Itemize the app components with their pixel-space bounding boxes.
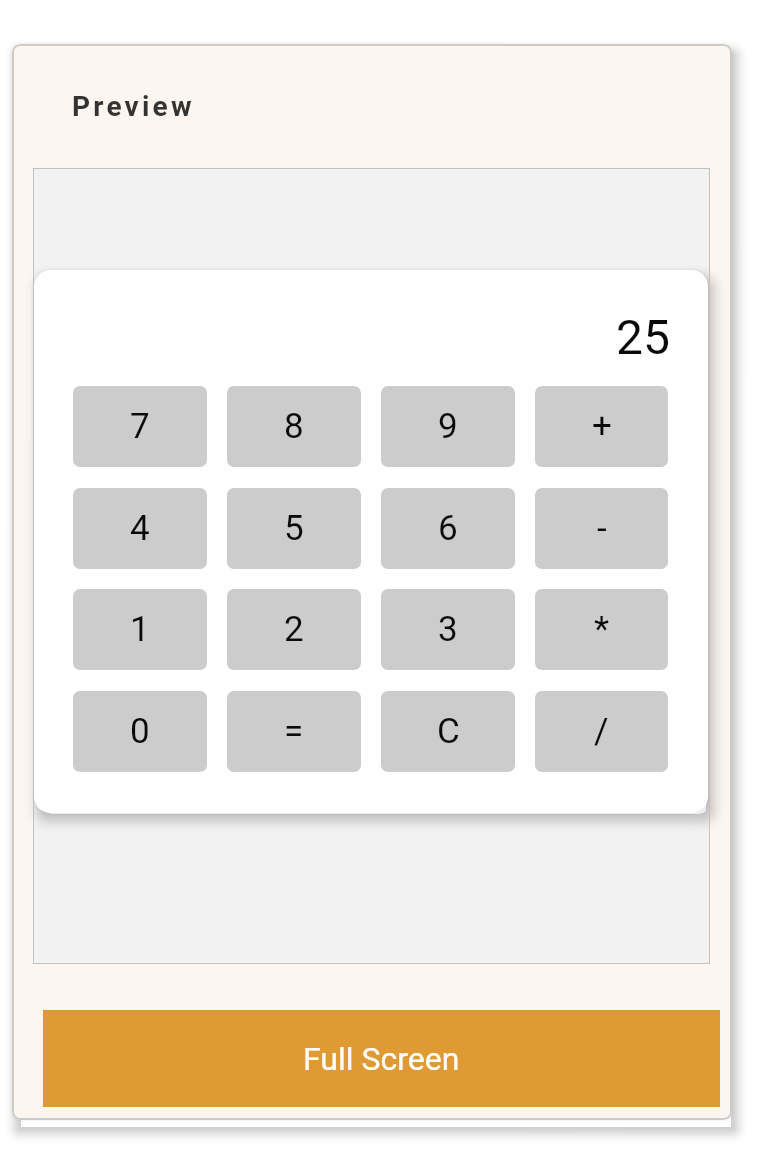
staticText: 3 (438, 609, 458, 650)
button[interactable]: 2 (227, 589, 361, 670)
staticText: - (597, 508, 607, 549)
button[interactable]: 1 (73, 589, 207, 670)
staticText: 5 (284, 508, 304, 549)
button[interactable]: 7 (73, 386, 207, 467)
button[interactable]: 3 (381, 589, 515, 670)
button[interactable]: C (381, 691, 515, 772)
staticText: 6 (438, 508, 458, 549)
staticText: 4 (130, 508, 150, 549)
staticText: 8 (284, 406, 304, 447)
staticText: 7 (130, 406, 150, 447)
staticText: 0 (130, 711, 150, 752)
staticText: C (437, 711, 460, 752)
button[interactable]: 9 (381, 386, 515, 467)
button[interactable]: 5 (227, 488, 361, 569)
button[interactable]: 4 (73, 488, 207, 569)
staticText: 25 (36, 309, 670, 365)
staticText: 9 (438, 406, 458, 447)
staticText: 2 (284, 609, 304, 650)
button[interactable]: 6 (381, 488, 515, 569)
staticText: / (594, 711, 609, 752)
other: Calculator preview (34, 270, 708, 813)
button[interactable]: 8 (227, 386, 361, 467)
staticText: 1 (130, 609, 150, 650)
button[interactable]: / (535, 691, 668, 772)
button[interactable]: 0 (73, 691, 207, 772)
staticText: * (594, 609, 610, 650)
button[interactable]: * (535, 589, 668, 670)
staticText: + (592, 406, 612, 447)
staticText: = (284, 711, 304, 752)
staticText: Preview (72, 90, 195, 123)
button[interactable]: + (535, 386, 668, 467)
button[interactable]: = (227, 691, 361, 772)
button[interactable]: - (535, 488, 668, 569)
button[interactable]: Full Screen (43, 1010, 720, 1107)
staticText: Full Screen (303, 1040, 460, 1078)
